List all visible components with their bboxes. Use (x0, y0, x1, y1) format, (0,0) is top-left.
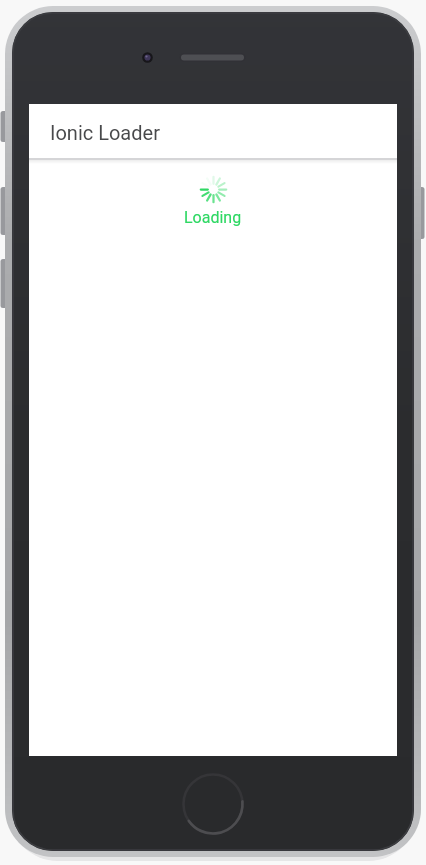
staticText: Ionic Loader (50, 121, 160, 144)
staticText: Loading (184, 208, 242, 227)
button[interactable]: Ionic Loader (29, 104, 397, 158)
